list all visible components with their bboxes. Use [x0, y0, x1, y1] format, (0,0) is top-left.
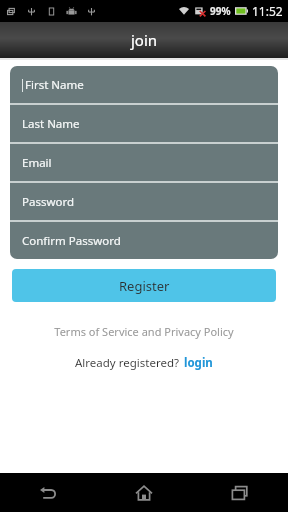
button[interactable]: Confirm Password [10, 222, 278, 259]
staticText: Confirm Password [22, 233, 121, 249]
staticText: 99% [210, 4, 231, 18]
staticText: Register [119, 277, 170, 295]
button[interactable]: login [184, 355, 213, 371]
button[interactable]: Password [10, 183, 278, 220]
button[interactable]: Register [12, 269, 276, 302]
button[interactable]: Home [96, 473, 192, 512]
button[interactable]: Terms of Service and Privacy Policy [0, 322, 288, 341]
staticText: First Name [25, 77, 84, 93]
button[interactable]: Recent apps [192, 473, 288, 512]
button[interactable]: Last Name [10, 105, 278, 142]
staticText: Password [22, 194, 75, 210]
staticText: Email [22, 155, 52, 171]
staticText: Last Name [22, 116, 80, 132]
staticText: 11:52 [252, 3, 283, 19]
staticText: Already registered? [75, 355, 179, 371]
staticText: login [184, 355, 213, 371]
button[interactable]: Email [10, 144, 278, 181]
staticText: join [131, 30, 158, 50]
button[interactable]: First Name [10, 66, 278, 103]
button[interactable]: Back [0, 473, 96, 512]
